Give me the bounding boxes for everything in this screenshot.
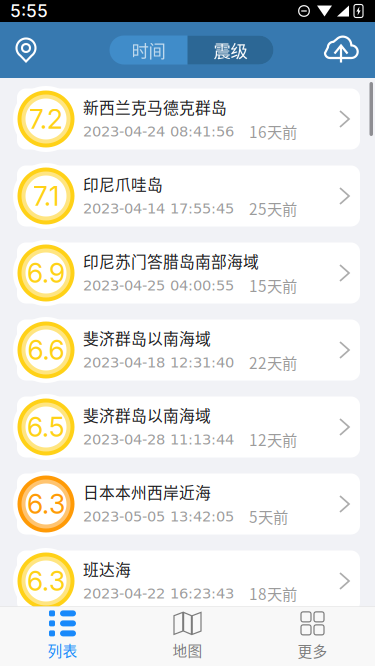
- staticText: 班达海: [83, 557, 131, 580]
- button[interactable]: 震级: [187, 35, 273, 64]
- staticText: 2023-04-22 16:23:43: [83, 585, 234, 602]
- staticText: 震级: [213, 37, 247, 63]
- staticText: 6.9: [27, 257, 65, 289]
- button[interactable]: 斐济群岛以南海域: [0, 396, 375, 458]
- button[interactable]: 上传: [327, 28, 371, 72]
- button[interactable]: 日本本州西岸近海: [0, 473, 375, 535]
- staticText: 斐济群岛以南海域: [83, 403, 211, 426]
- staticText: 12天前: [249, 428, 297, 450]
- staticText: 列表: [47, 639, 77, 661]
- staticText: 地图: [172, 639, 202, 661]
- staticText: 6.3: [27, 565, 65, 597]
- button[interactable]: 列表: [0, 607, 125, 666]
- staticText: 印尼爪哇岛: [83, 172, 163, 195]
- staticText: 7.1: [33, 180, 59, 212]
- staticText: 5天前: [249, 505, 288, 527]
- staticText: 5:55: [10, 0, 48, 21]
- staticText: 6.3: [27, 488, 65, 520]
- staticText: 25天前: [249, 197, 297, 219]
- staticText: 印尼苏门答腊岛南部海域: [83, 249, 259, 272]
- staticText: 2023-04-28 11:13:44: [83, 431, 234, 448]
- staticText: 时间: [131, 37, 165, 63]
- staticText: 2023-04-24 08:41:56: [83, 123, 234, 140]
- staticText: 2023-05-05 13:42:05: [83, 508, 234, 525]
- staticText: 2023-04-25 04:00:55: [83, 277, 234, 294]
- button[interactable]: 更多: [250, 607, 375, 666]
- button[interactable]: 定位: [4, 28, 48, 72]
- staticText: 15天前: [249, 274, 297, 296]
- button[interactable]: 印尼苏门答腊岛南部海域: [0, 242, 375, 304]
- staticText: 16天前: [249, 120, 297, 142]
- button[interactable]: 班达海: [0, 550, 375, 612]
- staticText: 新西兰克马德克群岛: [83, 95, 227, 118]
- staticText: 18天前: [249, 582, 297, 604]
- staticText: 更多: [297, 640, 327, 661]
- button[interactable]: 地图: [125, 607, 250, 666]
- button[interactable]: 斐济群岛以南海域: [0, 319, 375, 381]
- button[interactable]: 印尼爪哇岛: [0, 165, 375, 227]
- staticText: 6.6: [27, 334, 64, 366]
- staticText: 2023-04-18 12:31:40: [83, 354, 234, 371]
- button[interactable]: 时间: [109, 35, 187, 64]
- staticText: 2023-04-14 17:55:45: [83, 200, 234, 217]
- staticText: 日本本州西岸近海: [83, 480, 211, 503]
- staticText: 斐济群岛以南海域: [83, 326, 211, 349]
- staticText: 7.2: [29, 103, 63, 135]
- staticText: 22天前: [249, 351, 297, 373]
- button[interactable]: 新西兰克马德克群岛: [0, 88, 375, 150]
- staticText: 6.5: [27, 411, 65, 443]
